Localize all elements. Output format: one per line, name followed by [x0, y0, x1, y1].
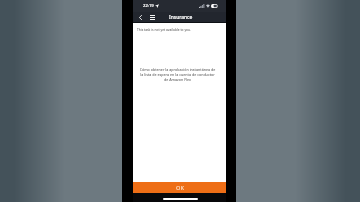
- button[interactable]: OK: [133, 182, 226, 193]
- button[interactable]: Menu: [148, 12, 157, 23]
- staticText: Insurance: [169, 14, 193, 21]
- staticText: This task is not yet available to you.: [137, 28, 191, 32]
- staticText: OK: [176, 184, 184, 192]
- staticText: 22:19: [143, 3, 154, 9]
- staticText: Cómo obtener la aprobación instantánea d…: [139, 67, 216, 82]
- button[interactable]: Back: [136, 12, 145, 23]
